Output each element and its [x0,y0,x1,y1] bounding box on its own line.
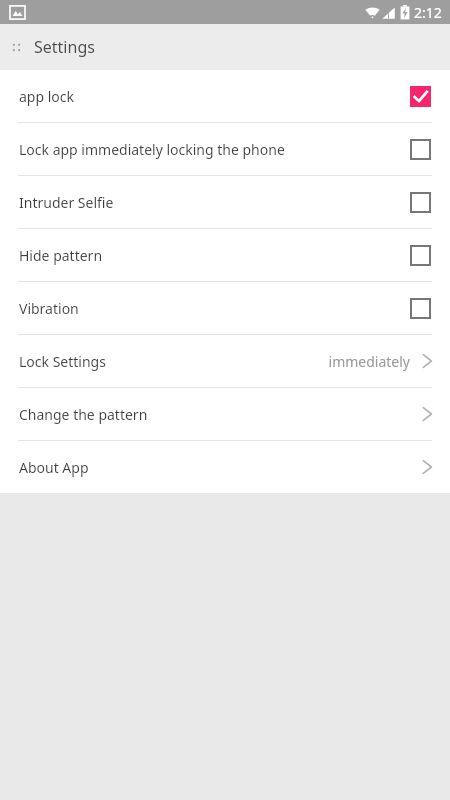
button[interactable]: Lock app immediately locking the phone [0,123,450,175]
staticText: Hide pattern [19,246,410,265]
button[interactable]: Unchecked [410,298,431,319]
staticText: Change the pattern [19,405,148,424]
staticText: immediately [328,352,410,371]
other: Open Change the pattern [421,404,434,424]
button[interactable]: Change the pattern [0,388,450,440]
staticText: app lock [19,87,410,106]
staticText: Vibration [19,299,410,318]
other: Open About App [421,457,434,477]
staticText: Lock Settings [19,352,106,371]
other: Open Lock Settings [421,351,434,371]
button[interactable]: Unchecked [410,245,431,266]
button[interactable]: Intruder Selfie [0,176,450,228]
staticText: Intruder Selfie [19,193,410,212]
staticText: Lock app immediately locking the phone [19,140,410,159]
button[interactable]: Vibration [0,282,450,334]
staticText: Settings [34,36,95,58]
button[interactable]: About App [0,441,450,493]
button[interactable]: app lock [0,70,450,122]
staticText: About App [19,458,89,477]
staticText: 2:12 [414,3,442,22]
button[interactable]: Checked [410,86,431,107]
button[interactable]: Unchecked [410,192,431,213]
button[interactable]: Lock Settings [0,335,450,387]
button[interactable]: Unchecked [410,139,431,160]
button[interactable]: Hide pattern [0,229,450,281]
